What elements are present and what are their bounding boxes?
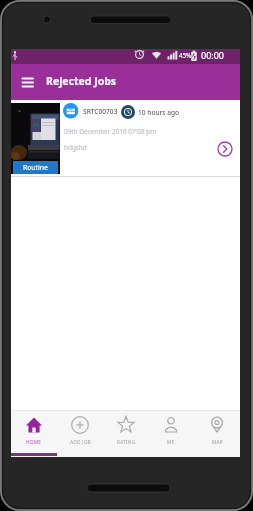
staticText: ME (167, 439, 175, 446)
button[interactable] (216, 140, 234, 158)
button[interactable]: Routine (11, 99, 240, 176)
staticText: MAP (212, 439, 223, 446)
button[interactable]: ADD JOB (57, 410, 103, 457)
button[interactable]: HOME (11, 410, 57, 457)
staticText: 00:00 (201, 49, 225, 61)
staticText: hdgshd (64, 143, 87, 152)
staticText: Routine (23, 163, 48, 172)
button[interactable] (15, 73, 41, 99)
staticText: 09th December 2016 07:08 pm (64, 127, 157, 136)
staticText: RATING (117, 439, 136, 446)
button[interactable]: Routine (13, 161, 58, 174)
staticText: HOME (26, 439, 42, 446)
staticText: SRTC00703 (83, 107, 118, 116)
button[interactable]: MAP (194, 410, 240, 457)
staticText: 10 hours ago (138, 108, 180, 117)
button[interactable]: ME (148, 410, 194, 457)
button[interactable]: RATING (103, 410, 149, 457)
staticText: Rejected Jobs (46, 74, 117, 88)
staticText: ADD JOB (70, 439, 91, 446)
staticText: 45% (179, 51, 192, 59)
